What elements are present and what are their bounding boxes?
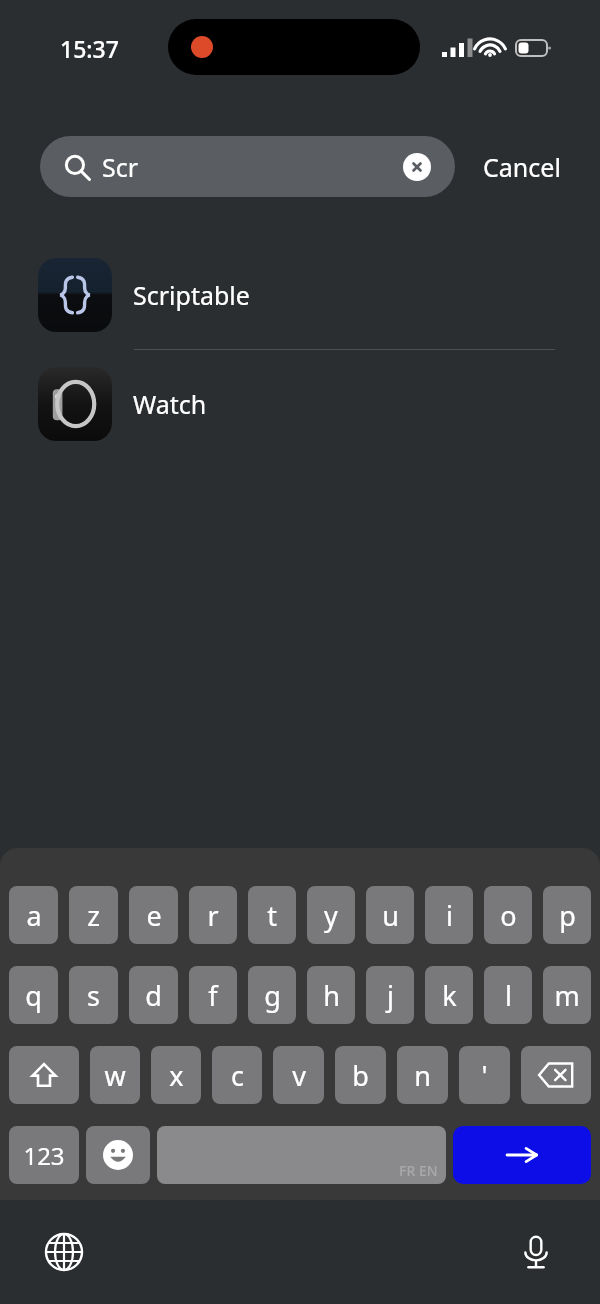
- button[interactable]: b: [335, 1046, 386, 1104]
- staticText: h: [323, 977, 340, 1014]
- staticText: Scriptable: [133, 278, 250, 312]
- button[interactable]: ': [459, 1046, 510, 1104]
- staticText: 15:37: [60, 33, 119, 64]
- button[interactable]: z: [69, 886, 118, 944]
- staticText: m: [554, 977, 580, 1014]
- button[interactable]: Enter: [453, 1126, 591, 1184]
- button[interactable]: Scr: [40, 136, 455, 197]
- button[interactable]: Backspace: [521, 1046, 591, 1104]
- button[interactable]: j: [366, 966, 414, 1024]
- staticText: i: [446, 897, 453, 934]
- button[interactable]: s: [69, 966, 118, 1024]
- staticText: l: [505, 977, 512, 1014]
- staticText: Scr: [102, 150, 139, 184]
- staticText: j: [387, 977, 394, 1014]
- button[interactable]: p: [543, 886, 591, 944]
- button[interactable]: Space: [157, 1126, 446, 1184]
- button[interactable]: t: [248, 886, 296, 944]
- staticText: 123: [23, 1139, 65, 1172]
- staticText: f: [208, 977, 218, 1014]
- button[interactable]: g: [248, 966, 296, 1024]
- button[interactable]: m: [543, 966, 591, 1024]
- button[interactable]: o: [484, 886, 532, 944]
- staticText: c: [231, 1057, 244, 1094]
- staticText: d: [145, 977, 162, 1014]
- button[interactable]: Voice input: [508, 1224, 564, 1280]
- button[interactable]: u: [366, 886, 414, 944]
- staticText: g: [264, 977, 281, 1014]
- staticText: z: [87, 897, 100, 934]
- staticText: ': [481, 1057, 488, 1094]
- button[interactable]: Emoji: [86, 1126, 150, 1184]
- staticText: v: [292, 1057, 306, 1094]
- button[interactable]: q: [9, 966, 58, 1024]
- button[interactable]: Clear text: [403, 153, 431, 181]
- staticText: o: [500, 897, 517, 934]
- button[interactable]: l: [484, 966, 532, 1024]
- staticText: u: [382, 897, 399, 934]
- button[interactable]: Change language: [36, 1224, 92, 1280]
- staticText: Watch: [133, 387, 207, 421]
- button[interactable]: c: [212, 1046, 262, 1104]
- button[interactable]: r: [189, 886, 237, 944]
- staticText: b: [352, 1057, 369, 1094]
- button[interactable]: i: [425, 886, 473, 944]
- staticText: e: [146, 897, 162, 934]
- button[interactable]: d: [129, 966, 178, 1024]
- staticText: r: [207, 897, 219, 934]
- button[interactable]: Scriptable: [0, 241, 600, 349]
- button[interactable]: e: [129, 886, 178, 944]
- staticText: y: [324, 897, 338, 934]
- staticText: a: [26, 897, 42, 934]
- staticText: Cancel: [483, 150, 561, 184]
- staticText: k: [442, 977, 457, 1014]
- button[interactable]: n: [397, 1046, 448, 1104]
- button[interactable]: h: [307, 966, 355, 1024]
- button[interactable]: y: [307, 886, 355, 944]
- staticText: t: [267, 897, 277, 934]
- button[interactable]: f: [189, 966, 237, 1024]
- button[interactable]: v: [273, 1046, 324, 1104]
- staticText: x: [169, 1057, 184, 1094]
- button[interactable]: k: [425, 966, 473, 1024]
- staticText: n: [414, 1057, 431, 1094]
- button[interactable]: a: [9, 886, 58, 944]
- staticText: p: [559, 897, 576, 934]
- button[interactable]: Watch: [0, 350, 600, 458]
- staticText: FR EN: [399, 1161, 438, 1180]
- staticText: s: [87, 977, 100, 1014]
- button[interactable]: Shift: [9, 1046, 79, 1104]
- button[interactable]: 123: [9, 1126, 79, 1184]
- staticText: q: [25, 977, 42, 1014]
- button[interactable]: w: [90, 1046, 140, 1104]
- button[interactable]: x: [151, 1046, 201, 1104]
- button[interactable]: Cancel: [483, 142, 561, 192]
- staticText: w: [104, 1057, 126, 1094]
